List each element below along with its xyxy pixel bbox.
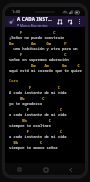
button[interactable]: A CADA INSTANTE	[17, 16, 55, 27]
staticText: a cada instante de mi vida	[9, 134, 82, 139]
staticText: F C	[9, 129, 82, 134]
button[interactable]: Back	[66, 165, 75, 174]
staticText: A cada instante de mi vida	[9, 90, 82, 95]
staticText: F C	[9, 30, 82, 35]
staticText: siempre te amare señor	[9, 145, 82, 150]
staticText: Dm Am Gm F	[9, 41, 82, 46]
staticText: Marco Barrientos	[20, 23, 48, 27]
staticText: Bb C	[9, 96, 82, 101]
staticText: yo te agradezco	[9, 101, 82, 106]
button[interactable]: Recent apps	[15, 165, 24, 174]
staticText: siempre te exaltare	[9, 123, 82, 128]
button[interactable]: More options	[75, 17, 84, 26]
staticText: aquí está mi corazón que te quiere adora…	[9, 68, 82, 73]
button[interactable]: Home	[41, 165, 50, 174]
staticText: Dm Am Gm C	[9, 63, 82, 68]
staticText: F C	[9, 52, 82, 57]
staticText: señor en supremeo adoración	[9, 57, 82, 62]
staticText: ¡Señor no puedo construir	[9, 35, 82, 40]
button[interactable]: Transpose	[65, 17, 75, 27]
staticText: 1:40	[12, 9, 20, 14]
staticText: F C	[9, 85, 82, 90]
staticText: Bb C	[9, 118, 82, 123]
staticText: a cada instante de mi vida	[9, 112, 82, 117]
staticText: A CADA INSTANTE	[17, 16, 55, 22]
staticText: F C	[9, 107, 82, 112]
staticText: Coro	[9, 78, 18, 83]
staticText: una habitación y otro para un	[9, 46, 82, 51]
button[interactable]: Instrument	[55, 17, 65, 27]
button[interactable]: Artist	[8, 18, 15, 25]
staticText: Bb C	[9, 140, 82, 145]
